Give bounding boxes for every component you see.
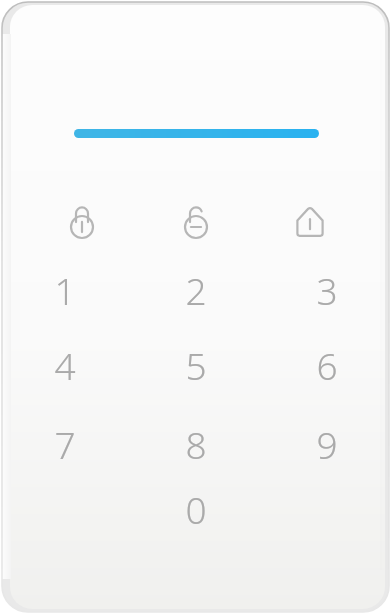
button[interactable]: 4 (0, 337, 130, 393)
button[interactable]: Lock (56, 196, 108, 248)
button[interactable]: 7 (0, 416, 130, 472)
staticText: 4 (54, 340, 76, 390)
button[interactable]: 8 (130, 416, 261, 472)
staticText: 0 (185, 484, 207, 534)
staticText: 8 (185, 419, 207, 469)
button[interactable]: 5 (130, 337, 261, 393)
staticText: 7 (54, 419, 76, 469)
button[interactable]: Unlock (170, 196, 222, 248)
button[interactable]: 3 (261, 262, 392, 318)
staticText: 1 (54, 265, 76, 315)
button[interactable]: Home (284, 196, 336, 248)
button[interactable] (74, 129, 319, 138)
button[interactable]: 6 (261, 337, 392, 393)
button[interactable]: 9 (261, 416, 392, 472)
staticText: 3 (316, 265, 338, 315)
staticText: 2 (185, 265, 207, 315)
staticText: 9 (316, 419, 338, 469)
button[interactable]: 1 (0, 262, 130, 318)
staticText: 5 (185, 340, 207, 390)
button[interactable]: 2 (130, 262, 261, 318)
button[interactable]: 0 (130, 481, 261, 537)
staticText: 6 (316, 340, 338, 390)
